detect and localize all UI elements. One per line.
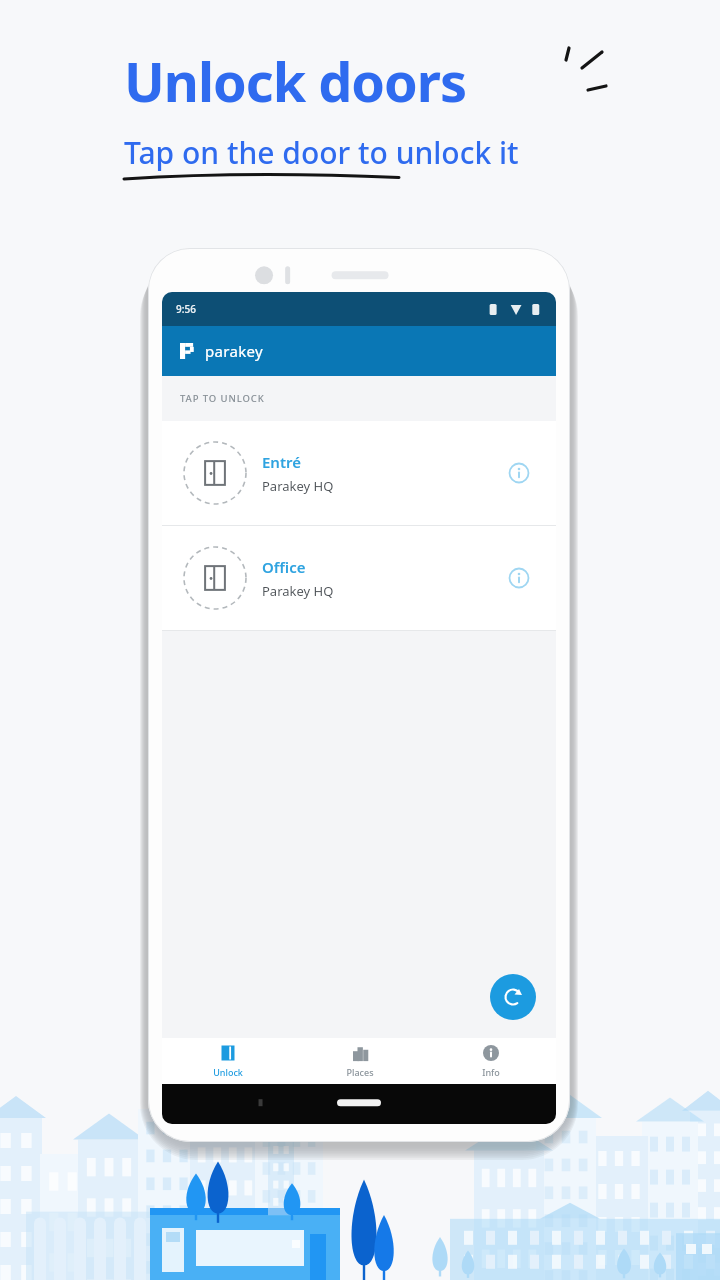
staticText: Tap on the door to unlock it	[124, 132, 519, 173]
button[interactable]: Info	[425, 1038, 556, 1084]
staticText: Parakey HQ	[262, 582, 334, 600]
button[interactable]: Places	[294, 1038, 425, 1084]
staticText: Office	[262, 557, 306, 577]
staticText: parakey	[205, 341, 263, 361]
staticText: 9:56	[176, 302, 196, 316]
button[interactable]: Entré	[162, 421, 556, 525]
staticText: TAP TO UNLOCK	[180, 392, 265, 405]
staticText: Info	[482, 1066, 500, 1078]
button[interactable]: Info about Entré	[502, 456, 536, 490]
staticText: Places	[346, 1066, 374, 1078]
staticText: Unlock doors	[124, 44, 467, 118]
staticText: Parakey HQ	[262, 477, 334, 495]
button[interactable]: Refresh	[490, 974, 536, 1020]
button[interactable]: Office	[162, 526, 556, 630]
button[interactable]: Info about Office	[502, 561, 536, 595]
button[interactable]: Unlock	[162, 1038, 294, 1084]
staticText: Unlock	[213, 1066, 243, 1078]
staticText: Entré	[262, 452, 302, 472]
